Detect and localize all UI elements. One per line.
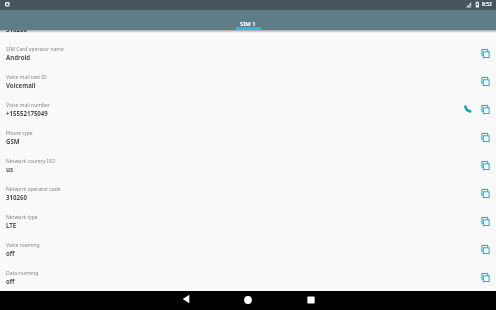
staticText: us: [6, 165, 14, 173]
button[interactable]: Data roaming: [0, 267, 496, 294]
button[interactable]: SIM 1: [240, 20, 256, 28]
staticText: Voice mail number: [6, 102, 50, 109]
staticText: Voicemail: [6, 81, 36, 89]
staticText: 8:52: [482, 1, 492, 8]
button[interactable]: Voice mail text ID: [0, 71, 496, 98]
button[interactable]: Network country ISO: [0, 155, 496, 182]
staticText: Network type: [6, 214, 38, 221]
button[interactable]: Voice mail number: [0, 99, 496, 126]
button[interactable]: [479, 187, 492, 200]
button[interactable]: [303, 292, 319, 308]
staticText: off: [6, 277, 15, 285]
staticText: +15552175049: [6, 109, 48, 117]
staticText: GSM: [6, 137, 20, 145]
staticText: Network country ISO: [6, 158, 56, 165]
button[interactable]: [479, 159, 492, 172]
button[interactable]: Voice roaming: [0, 239, 496, 266]
staticText: SIM 1: [240, 20, 256, 28]
staticText: 310260: [6, 193, 27, 201]
button[interactable]: [461, 103, 474, 116]
staticText: Phone type: [6, 130, 33, 137]
staticText: off: [6, 249, 15, 257]
button[interactable]: [479, 131, 492, 144]
staticText: 310260: [6, 25, 27, 33]
staticText: LTE: [6, 221, 17, 229]
staticText: Network operator code: [6, 186, 61, 193]
button[interactable]: [479, 243, 492, 256]
staticText: Android: [6, 53, 31, 61]
staticText: Voice mail text ID: [6, 74, 47, 81]
staticText: Voice roaming: [6, 242, 40, 249]
staticText: SIM Card operator name: [6, 46, 64, 53]
button[interactable]: [178, 291, 194, 307]
button[interactable]: [479, 47, 492, 60]
staticText: Data roaming: [6, 270, 39, 277]
button[interactable]: Network operator code: [0, 183, 496, 210]
button[interactable]: Network type: [0, 211, 496, 238]
button[interactable]: [479, 75, 492, 88]
button[interactable]: Phone type: [0, 127, 496, 154]
button[interactable]: [479, 215, 492, 228]
button[interactable]: SIM Card operator name: [0, 43, 496, 70]
button[interactable]: [479, 103, 492, 116]
button[interactable]: [479, 271, 492, 284]
button[interactable]: [240, 292, 256, 308]
